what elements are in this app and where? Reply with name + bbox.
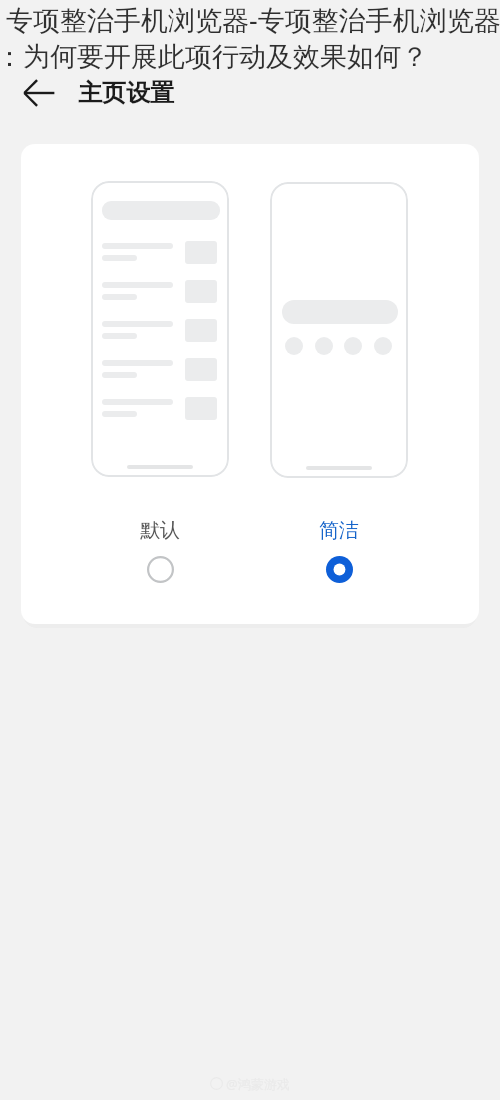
button[interactable]: 默认 [87, 177, 233, 586]
staticText: 主页设置 [78, 78, 174, 108]
button[interactable]: Back [17, 72, 61, 114]
staticText: 简洁 [319, 518, 359, 543]
staticText: 专项整治手机浏览器-专项整治手机浏览器 [6, 1, 500, 38]
staticText: 默认 [140, 518, 180, 543]
button[interactable]: 简洁 [266, 177, 412, 586]
staticText: ：为何要开展此项行动及效果如何？ [0, 40, 428, 74]
button[interactable]: 默认 [143, 552, 177, 586]
button[interactable]: 简洁 [322, 552, 356, 586]
